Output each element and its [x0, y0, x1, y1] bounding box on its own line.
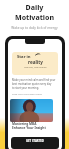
button[interactable]: GET STARTED: [11, 137, 59, 149]
staticText: Star in: [17, 54, 31, 60]
staticText: Motivation: [0, 13, 69, 23]
staticText: GET STARTED: [26, 139, 44, 143]
staticText: reality: [28, 59, 43, 65]
button[interactable]: Star in: [12, 52, 58, 75]
button[interactable]: [10, 99, 53, 122]
staticText: Daily: [0, 3, 69, 13]
staticText: Mastering MBA: [12, 122, 37, 126]
staticText: new day, new energy: [24, 66, 47, 69]
staticText: best motivation quote every day: [12, 82, 52, 86]
staticText: Wake up to daily kick of energy: [0, 26, 69, 30]
staticText: to start your morning.: [12, 86, 39, 90]
staticText: Enhance Your Insight: [12, 126, 46, 130]
other: decoration: [35, 53, 41, 56]
staticText: Save your mind with music: [12, 92, 43, 95]
staticText: Make your mind calm and find your: [12, 78, 56, 82]
